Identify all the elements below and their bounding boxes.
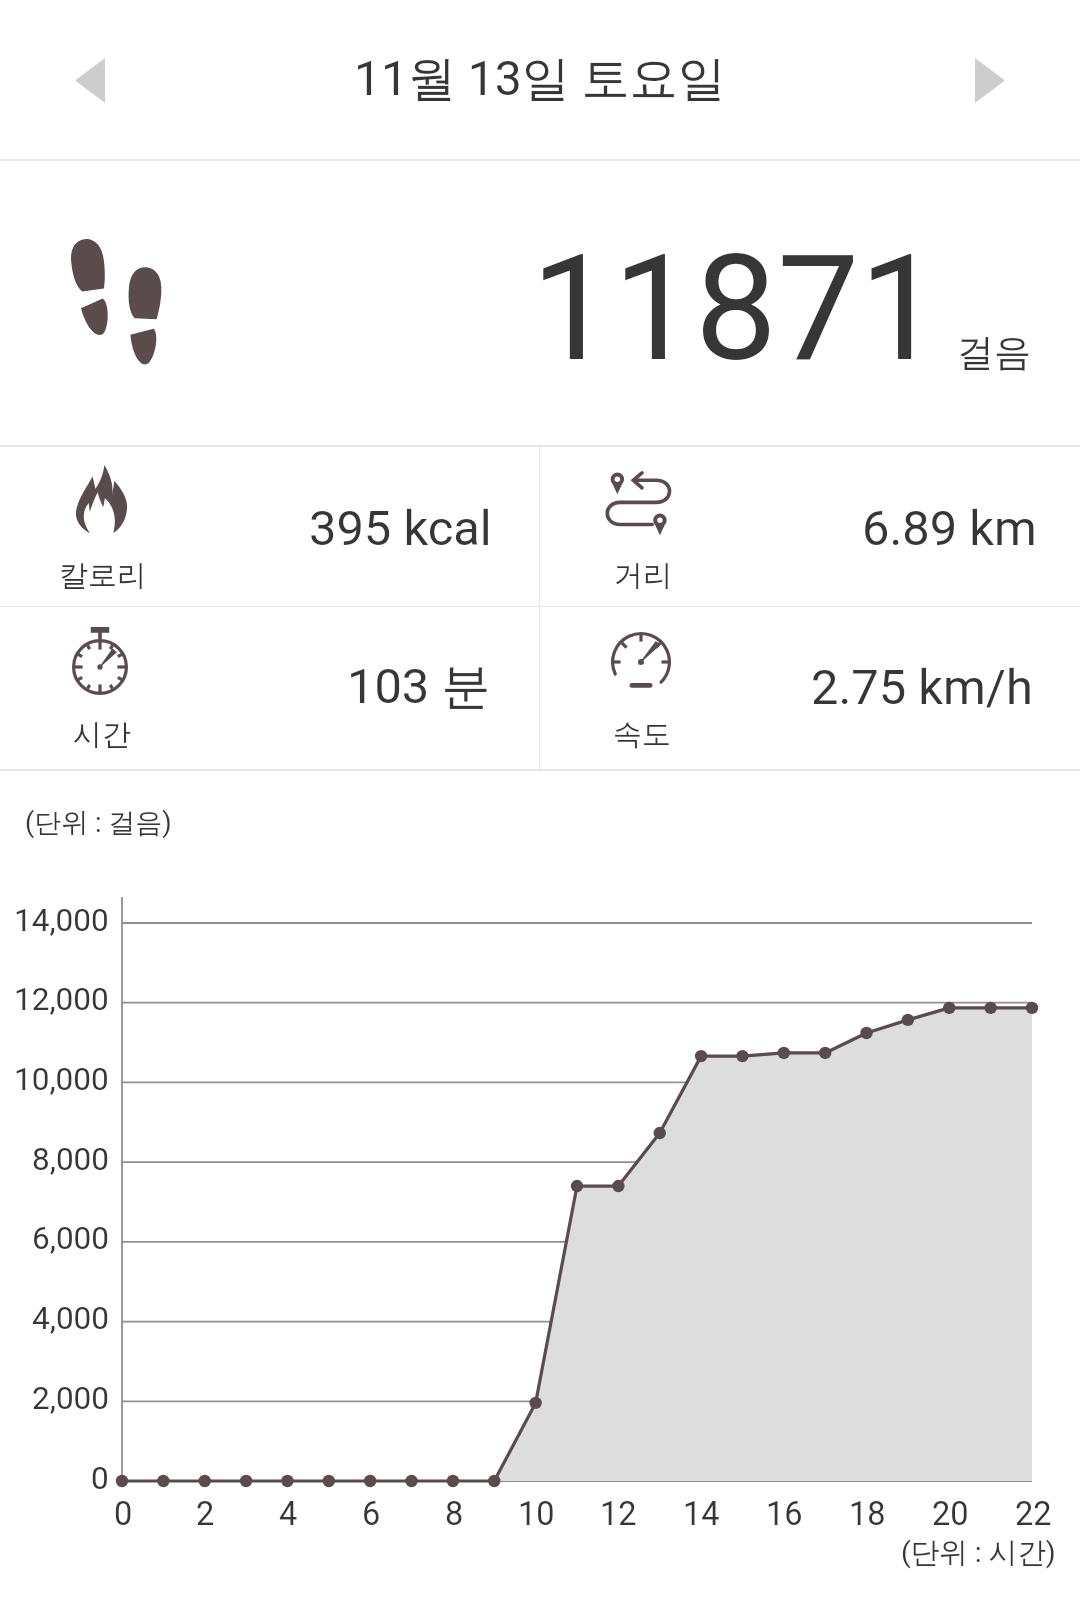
staticText: 18 — [849, 1495, 886, 1533]
staticText: 2.75 km/h — [811, 659, 1033, 716]
staticText: 20 — [932, 1495, 969, 1533]
button[interactable]: Previous day — [45, 35, 135, 125]
staticText: 12,000 — [14, 981, 109, 1018]
staticText: 0 — [91, 1460, 109, 1497]
staticText: (단위 : 시간) — [901, 1535, 1056, 1571]
staticText: 12 — [600, 1495, 637, 1533]
staticText: 14 — [683, 1495, 720, 1533]
staticText: 395 kcal — [309, 500, 492, 557]
staticText: 8 — [445, 1495, 464, 1533]
button[interactable]: Next day — [945, 35, 1035, 125]
button[interactable]: 칼로리 — [0, 446, 539, 603]
staticText: 103 분 — [347, 656, 491, 717]
staticText: 속도 — [613, 716, 671, 753]
staticText: 14,000 — [14, 902, 109, 939]
staticText: 6 — [362, 1495, 381, 1533]
staticText: 11월 13일 토요일 — [354, 49, 726, 109]
staticText: 0 — [114, 1495, 133, 1533]
staticText: 22 — [1015, 1495, 1052, 1533]
staticText: 10 — [518, 1495, 555, 1533]
staticText: 10,000 — [14, 1061, 109, 1098]
staticText: 16 — [766, 1495, 803, 1533]
staticText: 2,000 — [32, 1380, 110, 1417]
staticText: 4,000 — [32, 1300, 110, 1337]
staticText: 4 — [279, 1495, 298, 1533]
staticText: (단위 : 걸음) — [25, 806, 172, 840]
staticText: 시간 — [73, 716, 131, 753]
button[interactable]: 속도 — [540, 604, 1080, 762]
staticText: 6.89 km — [862, 500, 1037, 557]
staticText: 거리 — [614, 557, 672, 594]
button[interactable]: 거리 — [540, 446, 1080, 603]
button[interactable]: 시간 — [0, 604, 539, 762]
staticText: 8,000 — [32, 1141, 110, 1178]
staticText: 걸음 — [957, 329, 1031, 376]
staticText: 칼로리 — [59, 557, 146, 594]
staticText: 11871 — [531, 224, 942, 395]
staticText: 2 — [196, 1495, 215, 1533]
staticText: 6,000 — [32, 1220, 110, 1257]
